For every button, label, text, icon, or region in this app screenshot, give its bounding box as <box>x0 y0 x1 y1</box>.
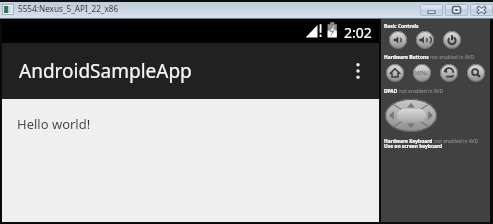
staticText: 2:02 <box>344 23 372 42</box>
button[interactable]: Volume down <box>389 31 407 49</box>
button[interactable]: D-pad <box>385 99 437 132</box>
staticText: not enabled in AVD <box>433 138 479 145</box>
staticText: 5554:Nexus_5_API_22_x86 <box>18 3 119 14</box>
button[interactable]: Back <box>440 64 458 82</box>
button[interactable]: More options <box>344 51 372 91</box>
button[interactable]: Close <box>470 4 493 16</box>
staticText: AndroidSampleApp <box>19 58 192 84</box>
staticText: Hardware Buttons <box>384 54 429 61</box>
staticText: not enabled in AVD <box>429 54 475 61</box>
button[interactable]: Maximize <box>445 4 468 16</box>
button[interactable]: Home <box>386 64 404 82</box>
staticText: Hardware Keyboard <box>384 138 433 145</box>
button[interactable]: Menu <box>413 64 431 82</box>
button[interactable]: Minimize <box>420 4 443 16</box>
staticText: Basic Controls <box>384 23 419 30</box>
button[interactable]: Volume up <box>416 31 434 49</box>
staticText: MENU <box>415 70 429 76</box>
button[interactable]: Search <box>467 64 485 82</box>
button[interactable]: Power <box>443 31 461 49</box>
staticText: Use on screen keyboard <box>384 143 443 150</box>
staticText: Hello world! <box>17 115 91 133</box>
staticText: DPAD <box>384 88 398 95</box>
staticText: not enabled in AVD <box>398 88 444 95</box>
